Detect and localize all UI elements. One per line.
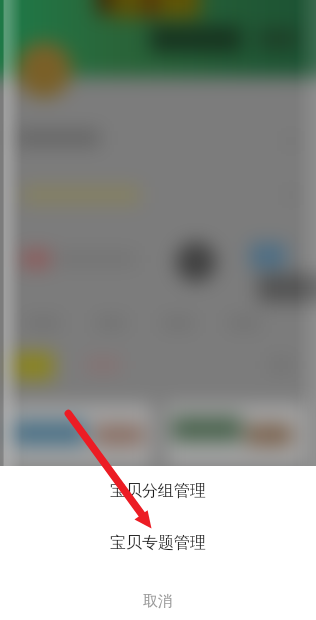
staticText: 取消 [143, 592, 173, 611]
staticText: 宝贝分组管理 [110, 481, 206, 501]
button[interactable]: 取消 [0, 583, 316, 619]
button[interactable]: 宝贝分组管理 [0, 473, 316, 509]
button[interactable]: 宝贝专题管理 [0, 525, 316, 561]
staticText: 宝贝专题管理 [110, 533, 206, 553]
